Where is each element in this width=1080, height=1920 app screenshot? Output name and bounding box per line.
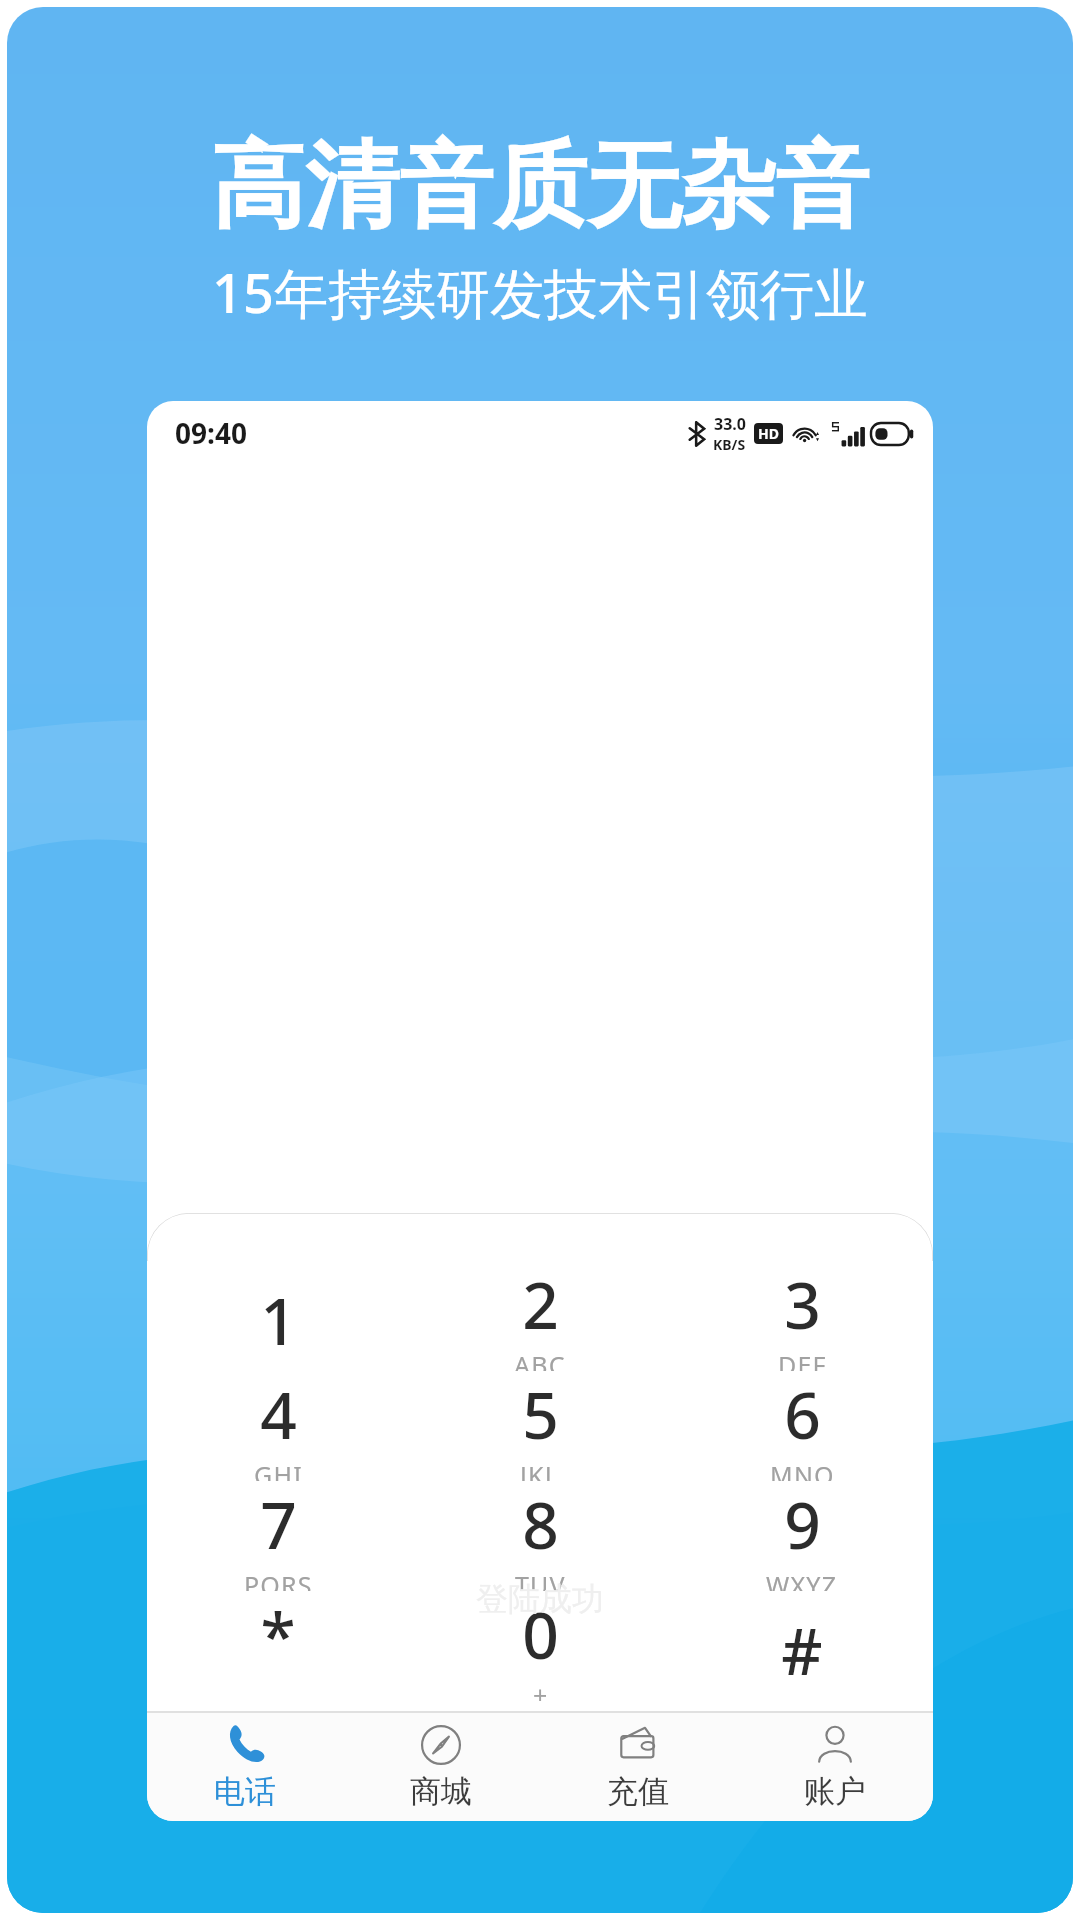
button[interactable]: 5 bbox=[409, 1375, 671, 1485]
staticText: 电话 bbox=[214, 1772, 276, 1811]
staticText: * bbox=[260, 1591, 296, 1678]
staticText: 4 bbox=[260, 1371, 297, 1458]
staticText: 09:40 bbox=[175, 414, 247, 452]
staticText: 3 bbox=[784, 1261, 821, 1348]
staticText: ABC bbox=[514, 1348, 566, 1371]
button[interactable]: 账户 bbox=[736, 1713, 933, 1821]
button[interactable]: * bbox=[147, 1595, 409, 1705]
staticText: 9 bbox=[784, 1481, 821, 1568]
staticText: # bbox=[781, 1607, 823, 1694]
staticText: 账户 bbox=[804, 1772, 866, 1811]
button[interactable]: 商城 bbox=[343, 1713, 539, 1821]
button[interactable]: 3 bbox=[671, 1265, 933, 1375]
staticText: 充值 bbox=[607, 1772, 669, 1811]
staticText: 6 bbox=[784, 1371, 821, 1458]
staticText: 2 bbox=[522, 1261, 559, 1348]
staticText: 33.0 bbox=[714, 413, 746, 435]
staticText: MNO bbox=[770, 1458, 835, 1481]
button[interactable]: 9 bbox=[671, 1485, 933, 1595]
button[interactable]: 7 bbox=[147, 1485, 409, 1595]
button[interactable]: 8 bbox=[409, 1485, 671, 1595]
button[interactable]: 4 bbox=[147, 1375, 409, 1485]
staticText: 15年持续研发技术引领行业 bbox=[7, 255, 1073, 329]
staticText: 登陆成功 bbox=[476, 1579, 604, 1619]
staticText: PQRS bbox=[244, 1568, 313, 1591]
staticText: 高清音质无杂音 bbox=[7, 127, 1073, 245]
button[interactable]: 1 bbox=[147, 1265, 409, 1375]
staticText: 7 bbox=[260, 1481, 297, 1568]
staticText: 0 bbox=[522, 1591, 559, 1678]
staticText: TUV bbox=[515, 1568, 566, 1591]
button[interactable]: # bbox=[671, 1595, 933, 1705]
staticText: 1 bbox=[260, 1277, 297, 1364]
button[interactable]: 2 bbox=[409, 1265, 671, 1375]
button[interactable]: 电话 bbox=[147, 1713, 343, 1821]
button[interactable]: 6 bbox=[671, 1375, 933, 1485]
button[interactable]: 0 bbox=[409, 1595, 671, 1705]
staticText: GHI bbox=[254, 1458, 303, 1481]
staticText: 8 bbox=[522, 1481, 559, 1568]
button[interactable]: 充值 bbox=[539, 1713, 736, 1821]
staticText: WXYZ bbox=[766, 1568, 838, 1591]
staticText: 5 bbox=[522, 1371, 559, 1458]
staticText: DEF bbox=[778, 1348, 827, 1371]
staticText: KB/S bbox=[713, 435, 746, 454]
staticText: HD bbox=[758, 424, 779, 443]
staticText: JKL bbox=[520, 1458, 560, 1481]
staticText: 商城 bbox=[410, 1772, 472, 1811]
staticText: + bbox=[533, 1678, 549, 1701]
